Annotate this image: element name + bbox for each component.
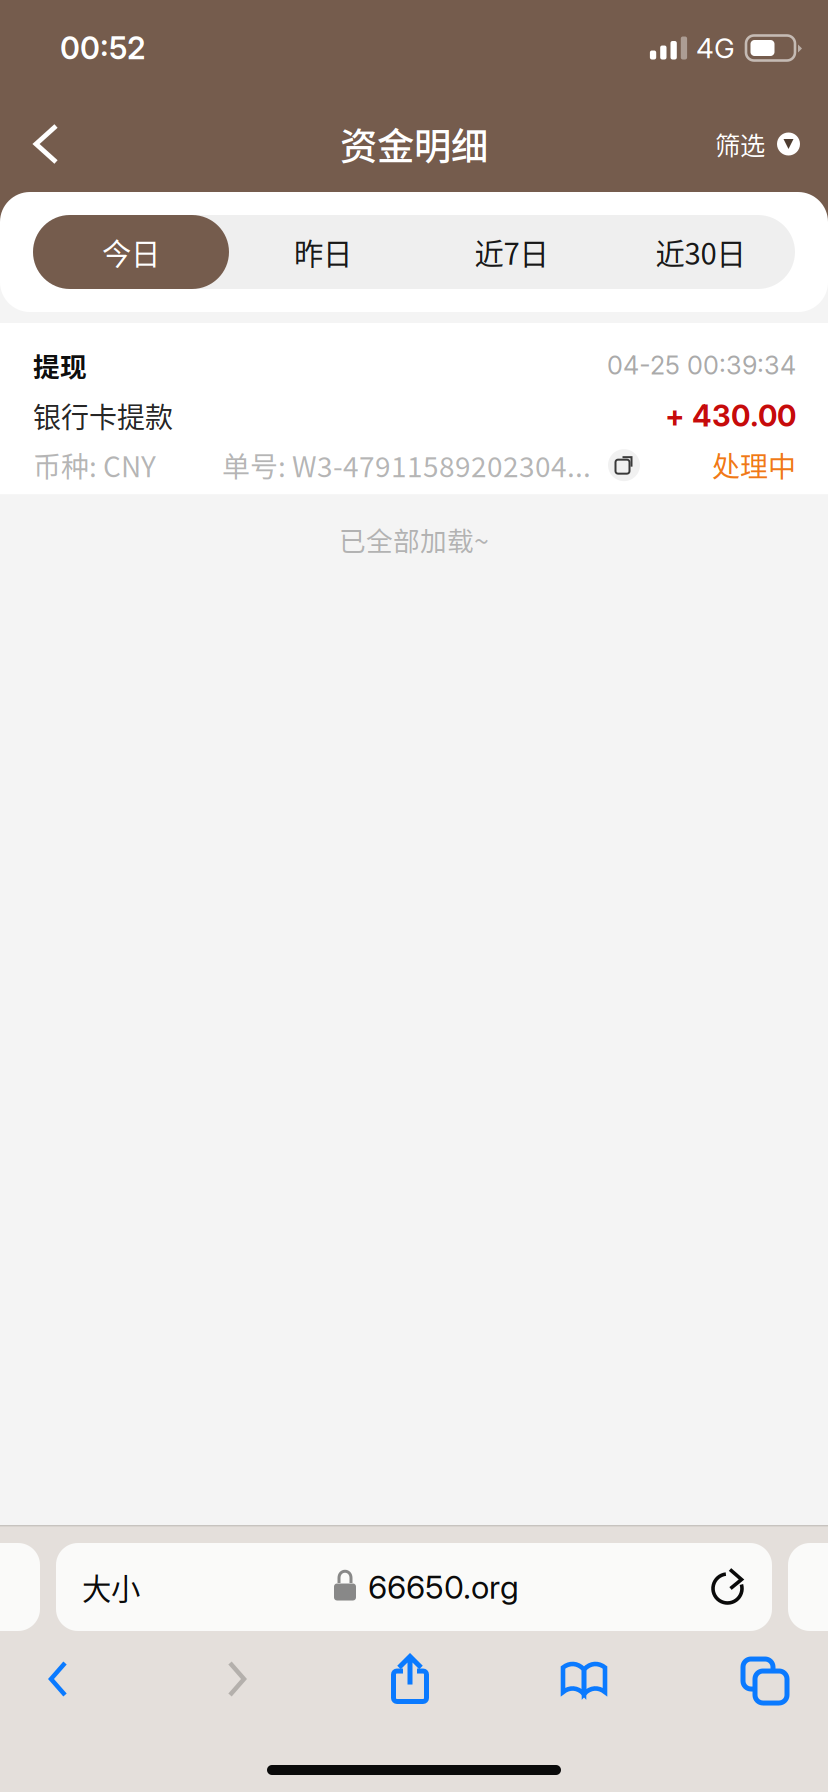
- staticText: 昨日: [294, 231, 352, 273]
- button[interactable]: 筛选: [693, 96, 828, 192]
- staticText: 已全部加载~: [339, 520, 489, 559]
- staticText: 大小: [82, 1566, 140, 1608]
- staticText: 筛选: [715, 126, 765, 162]
- button[interactable]: 书签: [462, 1647, 706, 1711]
- staticText: + 430.00: [665, 398, 796, 434]
- staticText: 银行卡提款: [33, 396, 173, 436]
- button[interactable]: 复制单号: [602, 444, 645, 486]
- button[interactable]: 分享: [358, 1647, 462, 1711]
- staticText: 00:52: [60, 29, 146, 66]
- staticText: 66650.org: [368, 1568, 519, 1606]
- button[interactable]: 返回: [0, 96, 89, 192]
- staticText: 单号: W3-47911589202304...: [222, 445, 591, 485]
- button[interactable]: 近7日: [417, 215, 606, 289]
- button[interactable]: 标签页: [706, 1647, 828, 1711]
- button[interactable]: 后退: [0, 1647, 116, 1711]
- staticText: 处理中: [712, 445, 796, 485]
- staticText: 今日: [102, 231, 160, 273]
- staticText: 提现: [33, 346, 87, 385]
- button[interactable]: 前进: [116, 1647, 358, 1711]
- button[interactable]: 近30日: [606, 215, 795, 289]
- staticText: 04-25 00:39:34: [607, 350, 796, 381]
- staticText: 资金明细: [340, 117, 488, 171]
- staticText: 4G: [696, 31, 735, 65]
- button[interactable]: 昨日: [229, 215, 417, 289]
- staticText: 币种: CNY: [33, 445, 156, 485]
- staticText: 近30日: [655, 231, 745, 273]
- button[interactable]: 大小: [0, 1543, 828, 1631]
- button[interactable]: 今日: [33, 215, 229, 289]
- staticText: 近7日: [474, 231, 548, 273]
